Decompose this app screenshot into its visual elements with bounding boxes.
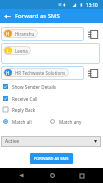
staticText: 13:10 (86, 2, 98, 8)
staticText: L (7, 48, 10, 54)
staticText: H (6, 70, 10, 76)
button[interactable]: Pick contact (86, 27, 99, 41)
button[interactable] (1, 43, 100, 64)
staticText: HR Techwaste Solutions (15, 70, 66, 76)
staticText: Show Sender Details (12, 84, 57, 90)
staticText: Leena (15, 48, 28, 54)
staticText: Active (5, 138, 20, 145)
button[interactable] (1, 66, 84, 80)
button[interactable]: Home (42, 168, 62, 183)
staticText: Match all (12, 119, 32, 125)
staticText: Receive Call (12, 96, 38, 102)
staticText: Forward as SMS (15, 12, 60, 20)
button[interactable]: Active (1, 136, 101, 147)
button[interactable] (1, 27, 84, 41)
staticText: Match any (59, 119, 82, 125)
button[interactable]: Pick contact (86, 66, 99, 80)
button[interactable]: Recent apps (72, 168, 92, 183)
button[interactable]: Back (11, 168, 31, 183)
button[interactable]: Back (0, 9, 15, 23)
staticText: FORWARD AS SMS (34, 156, 69, 161)
button[interactable]: Show Sender Details (0, 81, 57, 92)
staticText: H (6, 31, 10, 37)
button[interactable]: FORWARD AS SMS (30, 153, 73, 164)
staticText: Reply Back (12, 107, 36, 113)
button[interactable]: Match all (0, 116, 32, 127)
staticText: Hiranshu (15, 31, 35, 37)
button[interactable]: Receive Call (0, 93, 38, 104)
button[interactable]: Reply Back (0, 104, 36, 115)
button[interactable]: Match any (47, 116, 82, 127)
